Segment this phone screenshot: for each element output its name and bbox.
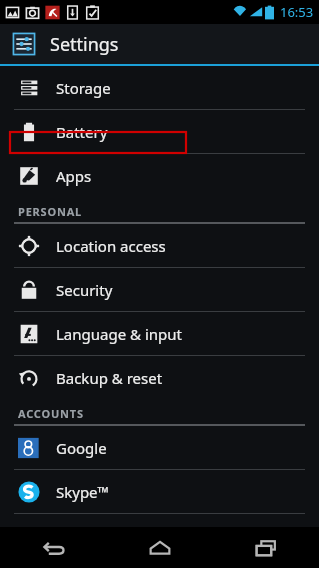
staticText: Settings bbox=[50, 32, 119, 57]
staticText: Security bbox=[56, 280, 113, 300]
button[interactable]: Google bbox=[0, 426, 319, 469]
staticText: ACCOUNTS bbox=[18, 406, 84, 421]
staticText: Storage bbox=[56, 78, 111, 98]
button[interactable]: Skype™ bbox=[0, 470, 319, 513]
button[interactable]: Security bbox=[0, 268, 319, 311]
staticText: Apps bbox=[56, 166, 92, 186]
staticText: PERSONAL bbox=[18, 204, 83, 219]
staticText: Battery bbox=[56, 122, 108, 142]
button[interactable]: Home bbox=[107, 527, 213, 568]
staticText: Google bbox=[56, 438, 107, 458]
button[interactable]: Backup & reset bbox=[0, 356, 319, 399]
staticText: Location access bbox=[56, 236, 166, 256]
button[interactable]: Language & input bbox=[0, 312, 319, 355]
button[interactable]: Apps bbox=[0, 154, 319, 197]
staticText: Language & input bbox=[56, 324, 182, 344]
button[interactable]: Recent apps bbox=[213, 527, 319, 568]
button[interactable]: Storage bbox=[0, 66, 319, 109]
staticText: 16:53 bbox=[280, 3, 314, 21]
staticText: Backup & reset bbox=[56, 368, 163, 388]
button[interactable]: Back bbox=[0, 527, 107, 568]
staticText: Skype™ bbox=[56, 482, 110, 502]
button[interactable]: Battery bbox=[0, 110, 319, 153]
button[interactable]: Location access bbox=[0, 224, 319, 267]
